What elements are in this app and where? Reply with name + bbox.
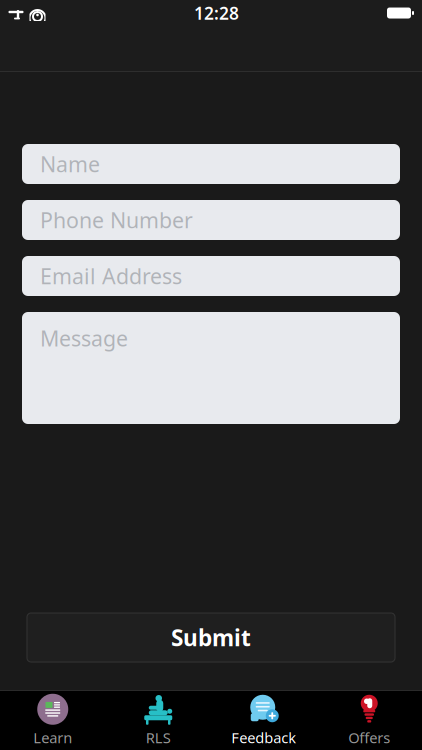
staticText: Learn [33,728,72,747]
button[interactable]: Email Address [22,256,400,296]
button[interactable]: Submit [27,613,395,662]
staticText: Feedback [231,728,296,747]
staticText: Email Address [40,262,182,290]
button[interactable]: RLS [105,691,211,750]
staticText: Offers [348,728,390,747]
button[interactable]: Offers [316,691,422,750]
staticText: RLS [146,728,171,747]
staticText: Submit [171,622,251,652]
staticText: Name [40,150,100,178]
staticText: Message [40,324,128,352]
button[interactable]: Name [22,144,400,184]
button[interactable]: Feedback [211,691,316,750]
button[interactable]: Message [22,312,400,424]
staticText: Phone Number [40,206,193,234]
button[interactable]: Phone Number [22,200,400,240]
staticText: 12:28 [194,1,239,24]
button[interactable]: Learn [0,691,105,750]
